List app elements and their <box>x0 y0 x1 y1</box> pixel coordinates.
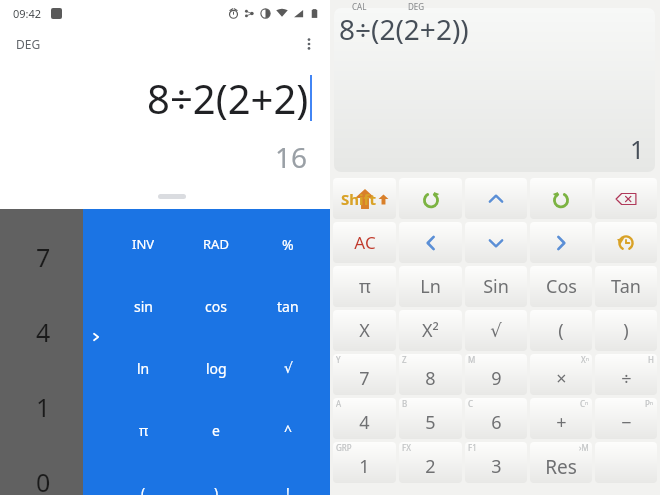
staticText: 5 <box>425 410 436 435</box>
button[interactable]: ln <box>107 353 180 383</box>
button[interactable]: Tan <box>595 266 657 307</box>
staticText: 3 <box>491 454 502 479</box>
staticText: 8 <box>425 366 436 391</box>
button[interactable]: AC <box>333 222 396 263</box>
button[interactable]: X² <box>399 310 462 351</box>
button[interactable]: 3 <box>465 442 527 483</box>
staticText: ( <box>141 483 146 495</box>
staticText: X² <box>422 318 439 343</box>
button[interactable]: DEG <box>16 36 41 52</box>
button[interactable]: ) <box>180 477 252 495</box>
staticText: cos <box>205 297 227 316</box>
staticText: tan <box>277 297 299 316</box>
button[interactable]: Expand keypad <box>158 194 186 199</box>
button[interactable]: √ <box>465 310 527 351</box>
button[interactable]: key <box>465 222 527 263</box>
staticText: ( <box>558 318 564 343</box>
staticText: + <box>556 410 567 435</box>
staticText: Y <box>336 354 341 365</box>
button[interactable]: 9 <box>465 354 527 395</box>
button[interactable]: 2 <box>399 442 462 483</box>
button[interactable]: 1 <box>333 442 396 483</box>
button[interactable]: 7 <box>333 354 396 395</box>
staticText: A <box>336 398 342 409</box>
button[interactable]: √ <box>252 353 324 383</box>
button[interactable]: key <box>595 178 657 219</box>
button[interactable]: key <box>399 222 462 263</box>
staticText: ) <box>214 483 219 495</box>
button[interactable]: X <box>333 310 396 351</box>
staticText: AC <box>354 231 376 254</box>
staticText: Res <box>545 454 577 480</box>
staticText: ^ <box>284 421 293 440</box>
button[interactable]: Sin <box>465 266 527 307</box>
button[interactable]: Cos <box>530 266 592 307</box>
staticText: Sin <box>483 274 509 299</box>
button[interactable]: INV <box>107 229 180 259</box>
button[interactable]: 0 <box>36 465 51 495</box>
button[interactable]: Res <box>530 442 592 483</box>
button[interactable]: tan <box>252 291 324 321</box>
button[interactable]: % <box>252 229 324 259</box>
button[interactable]: π <box>333 266 396 307</box>
staticText: DEG <box>408 1 425 12</box>
button[interactable]: Collapse <box>87 328 105 346</box>
staticText: × <box>556 366 567 391</box>
staticText: 9 <box>491 366 502 391</box>
staticText: 1 <box>630 132 645 166</box>
button[interactable]: π <box>107 415 180 445</box>
staticText: RAD <box>203 235 229 253</box>
button[interactable]: 8 <box>399 354 462 395</box>
staticText: 7 <box>359 366 370 391</box>
button[interactable]: 4 <box>333 398 396 439</box>
button[interactable]: key <box>595 222 657 263</box>
staticText: GRP <box>336 442 352 453</box>
button[interactable]: key <box>465 178 527 219</box>
staticText: 1 <box>359 454 370 479</box>
staticText: INV <box>132 235 155 253</box>
button[interactable]: ! <box>252 477 324 495</box>
button[interactable]: sin <box>107 291 180 321</box>
button[interactable]: cos <box>180 291 252 321</box>
staticText: π <box>359 274 371 299</box>
staticText: F1 <box>468 442 477 453</box>
staticText: B <box>402 398 408 409</box>
staticText: C <box>468 398 474 409</box>
button[interactable]: key <box>595 442 657 483</box>
button[interactable]: e <box>180 415 252 445</box>
button[interactable]: 6 <box>465 398 527 439</box>
staticText: ! <box>286 483 290 495</box>
staticText: log <box>206 359 227 378</box>
button[interactable]: key <box>530 178 592 219</box>
button[interactable]: 1 <box>36 390 51 424</box>
button[interactable]: 5 <box>399 398 462 439</box>
button[interactable]: More options <box>296 31 322 57</box>
button[interactable]: key <box>530 222 592 263</box>
button[interactable]: ( <box>107 477 180 495</box>
button[interactable]: log <box>180 353 252 383</box>
staticText: sin <box>134 297 153 316</box>
button[interactable]: + <box>530 398 592 439</box>
button[interactable]: ) <box>595 310 657 351</box>
button[interactable]: ( <box>530 310 592 351</box>
staticText: Shift <box>341 189 376 209</box>
staticText: Cⁿ <box>580 398 589 409</box>
staticText: FX <box>402 442 411 453</box>
staticText: ) <box>623 318 629 343</box>
button[interactable]: 4 <box>36 315 51 349</box>
button[interactable]: × <box>530 354 592 395</box>
staticText: M <box>468 354 476 365</box>
button[interactable]: ÷ <box>595 354 657 395</box>
button[interactable]: ^ <box>252 415 324 445</box>
button[interactable]: Shift <box>333 178 396 219</box>
button[interactable]: Ln <box>399 266 462 307</box>
button[interactable]: key <box>399 178 462 219</box>
button[interactable]: 7 <box>36 240 51 274</box>
button[interactable]: RAD <box>180 229 252 259</box>
button[interactable]: − <box>595 398 657 439</box>
staticText: H <box>648 354 654 365</box>
staticText: 4 <box>359 410 370 435</box>
staticText: ›M <box>579 442 589 453</box>
staticText: ln <box>137 359 150 378</box>
staticText: Ln <box>420 274 441 299</box>
